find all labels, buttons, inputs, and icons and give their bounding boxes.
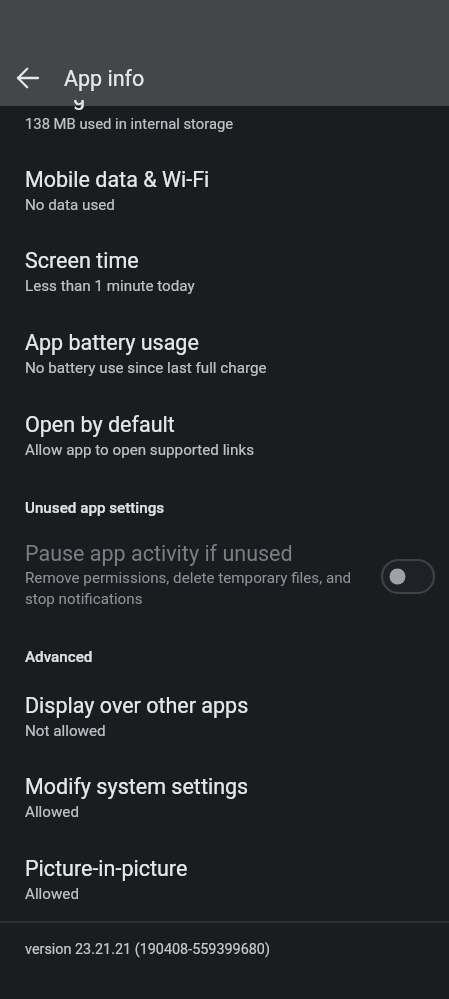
staticText: version 23.21.21 (190408-559399680) [25,941,270,958]
button[interactable]: Display over other apps [0,678,449,754]
staticText: Open by default [25,412,175,437]
staticText: Allow app to open supported links [25,441,254,459]
button[interactable]: Mobile data & Wi-Fi [0,152,449,228]
staticText: g [73,100,86,110]
button[interactable]: Pause app activity if unused [0,536,449,616]
staticText: 138 MB used in internal storage [25,115,234,132]
staticText: Allowed [25,885,79,903]
staticText: No data used [25,196,115,214]
staticText: Less than 1 minute today [25,277,195,295]
button[interactable]: App battery usage [0,315,449,391]
staticText: Pause app activity if unused [25,541,293,566]
button[interactable]: Screen time [0,233,449,309]
button[interactable]: Open by default [0,397,449,473]
staticText: Remove permissions, delete temporary fil… [25,569,352,607]
staticText: Picture-in-picture [25,856,188,881]
staticText: Mobile data & Wi-Fi [25,167,210,192]
staticText: Unused app settings [25,499,165,517]
staticText: App info [64,66,145,91]
staticText: No battery use since last full charge [25,359,267,377]
staticText: Display over other apps [25,693,249,718]
staticText: Allowed [25,803,79,821]
staticText: Not allowed [25,722,106,740]
staticText: App battery usage [25,330,199,355]
staticText: Screen time [25,248,139,273]
staticText: Modify system settings [25,774,249,799]
button[interactable]: Modify system settings [0,759,449,835]
button[interactable]: Picture-in-picture [0,841,449,917]
button[interactable] [4,54,52,102]
staticText: Advanced [25,648,93,666]
